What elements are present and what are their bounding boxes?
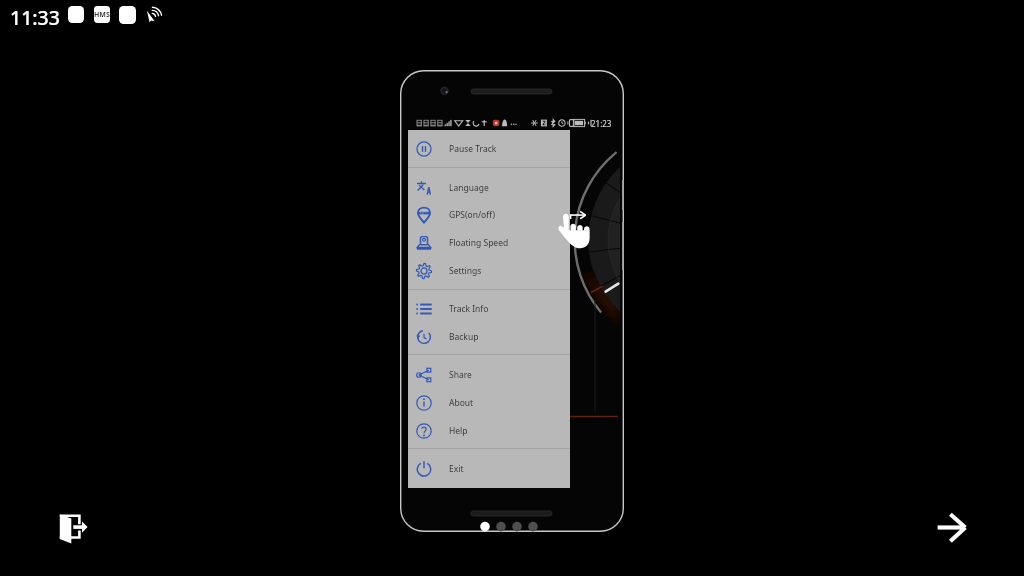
staticText: Track Info xyxy=(449,303,489,315)
staticText: Floating Speed xyxy=(449,237,509,249)
staticText: HMS xyxy=(94,10,110,20)
staticText: Help xyxy=(449,425,468,437)
button[interactable]: Skip tutorial xyxy=(44,499,103,559)
button[interactable]: Pause Track xyxy=(408,136,570,162)
button[interactable]: Help xyxy=(408,418,570,444)
other: Swipe right xyxy=(557,209,591,248)
staticText: Settings xyxy=(449,265,482,277)
staticText: 11:33 xyxy=(10,4,60,31)
button[interactable]: Backup xyxy=(408,324,570,350)
staticText: GPS(on/off) xyxy=(449,209,495,221)
button[interactable]: Next xyxy=(920,499,980,559)
staticText: Backup xyxy=(449,331,479,343)
staticText: About xyxy=(449,397,474,409)
button[interactable]: GPS(on/off) xyxy=(408,202,570,228)
button[interactable]: About xyxy=(408,390,570,416)
button[interactable]: Exit xyxy=(408,456,570,482)
button[interactable]: Share xyxy=(408,362,570,388)
button[interactable]: Language xyxy=(408,175,570,201)
staticText: Pause Track xyxy=(449,143,497,155)
staticText: Exit xyxy=(449,463,464,475)
staticText: Language xyxy=(449,182,489,194)
button[interactable]: Floating Speed xyxy=(408,230,570,256)
staticText: Share xyxy=(449,369,472,381)
staticText: 21:23 xyxy=(591,118,612,129)
button[interactable]: Settings xyxy=(408,258,570,284)
button[interactable]: Track Info xyxy=(408,296,570,322)
